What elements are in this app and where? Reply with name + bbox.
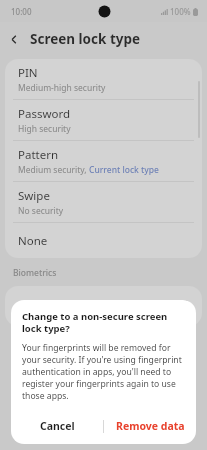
button[interactable]: Home: [69, 424, 138, 450]
staticText: None: [18, 233, 48, 249]
button[interactable]: None: [5, 223, 202, 258]
button[interactable]: Swipe: [5, 182, 202, 222]
staticText: Biometrics: [13, 267, 57, 279]
staticText: Swipe: [18, 188, 50, 204]
staticText: Your fingerprints will be removed for yo…: [22, 342, 185, 402]
staticText: No security: [18, 205, 64, 217]
staticText: Remove data: [116, 419, 185, 433]
staticText: Pattern: [18, 147, 59, 163]
staticText: Medium security,: [18, 164, 89, 176]
staticText: 100%: [170, 6, 191, 17]
staticText: PIN: [18, 65, 38, 81]
staticText: Medium-high security: [18, 82, 106, 94]
staticText: Face: [18, 298, 43, 314]
button[interactable]: Face: [5, 286, 202, 326]
staticText: High security: [18, 123, 71, 135]
button[interactable]: PIN: [5, 59, 202, 99]
button[interactable]: Password: [5, 100, 202, 140]
staticText: 10:00: [11, 6, 32, 17]
staticText: Screen lock type: [30, 30, 141, 48]
button[interactable]: Face unlock toggle: [167, 300, 191, 313]
staticText: Password: [18, 106, 71, 122]
staticText: Current lock type: [89, 164, 159, 176]
button[interactable]: Pattern: [5, 141, 202, 181]
button[interactable]: Cancel: [11, 412, 103, 440]
button[interactable]: Recent apps: [0, 424, 69, 450]
button[interactable]: Back: [0, 25, 28, 53]
staticText: Cancel: [40, 419, 75, 433]
button[interactable]: Remove data: [104, 412, 196, 440]
button[interactable]: Back: [138, 424, 207, 450]
staticText: Change to a non-secure screen lock type?: [22, 310, 185, 335]
